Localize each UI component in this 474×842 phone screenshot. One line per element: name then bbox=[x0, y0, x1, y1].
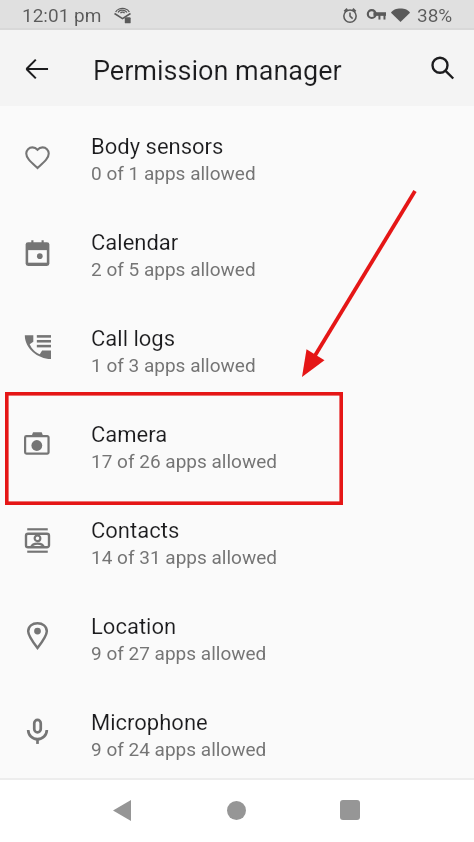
button[interactable]: Back bbox=[92, 780, 152, 840]
button[interactable]: Recents bbox=[320, 780, 380, 840]
staticText: Contacts bbox=[91, 518, 180, 544]
button[interactable]: Microphone bbox=[0, 682, 474, 778]
button[interactable]: Back bbox=[13, 30, 61, 106]
staticText: 9 of 24 apps allowed bbox=[91, 738, 267, 760]
staticText: 2 of 5 apps allowed bbox=[91, 258, 256, 280]
button[interactable]: Call logs bbox=[0, 298, 474, 394]
staticText: Calendar bbox=[91, 230, 179, 256]
button[interactable]: Location bbox=[0, 586, 474, 682]
staticText: Permission manager bbox=[93, 55, 342, 87]
staticText: Microphone bbox=[91, 710, 208, 736]
button[interactable]: Contacts bbox=[0, 490, 474, 586]
button[interactable]: Camera bbox=[0, 394, 474, 490]
staticText: Body sensors bbox=[91, 134, 224, 160]
staticText: 1 of 3 apps allowed bbox=[91, 354, 256, 376]
button[interactable]: Search bbox=[418, 30, 466, 106]
staticText: Location bbox=[91, 614, 177, 640]
button[interactable]: Body sensors bbox=[0, 106, 474, 202]
staticText: Camera bbox=[91, 422, 168, 448]
staticText: Call logs bbox=[91, 326, 176, 352]
staticText: 9 of 27 apps allowed bbox=[91, 642, 267, 664]
staticText: 12:01 pm bbox=[22, 4, 102, 26]
staticText: 0 of 1 apps allowed bbox=[91, 162, 256, 184]
staticText: 14 of 31 apps allowed bbox=[91, 546, 277, 568]
staticText: 38% bbox=[417, 4, 453, 26]
button[interactable]: Home bbox=[206, 780, 266, 840]
button[interactable]: Calendar bbox=[0, 202, 474, 298]
staticText: 17 of 26 apps allowed bbox=[91, 450, 277, 472]
